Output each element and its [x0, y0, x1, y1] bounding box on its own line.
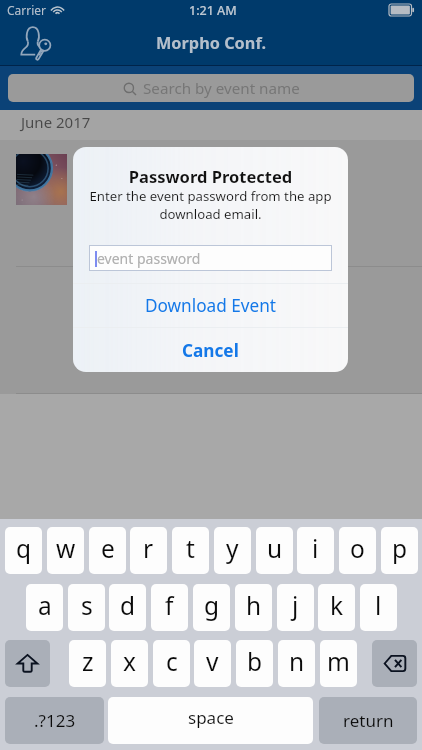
staticText: c — [166, 645, 178, 678]
button[interactable]: w — [47, 527, 84, 574]
button[interactable]: Shift — [5, 640, 50, 687]
staticText: b — [247, 645, 263, 678]
staticText: space — [188, 706, 234, 729]
button[interactable]: e — [89, 527, 126, 574]
staticText: r — [143, 532, 154, 565]
button[interactable]: Account login — [12, 19, 60, 67]
staticText: q — [16, 532, 32, 565]
button[interactable]: space — [108, 697, 313, 744]
staticText: Morpho Conf. — [156, 32, 266, 54]
staticText: s — [81, 589, 93, 622]
button[interactable]: n — [278, 640, 315, 687]
button[interactable]: p — [381, 527, 418, 574]
button[interactable]: o — [339, 527, 376, 574]
staticText: d — [120, 589, 136, 622]
staticText: Enter the event password from the app do… — [73, 187, 348, 223]
staticText: .?123 — [34, 709, 76, 732]
button[interactable]: d — [109, 584, 146, 631]
button[interactable]: q — [5, 527, 42, 574]
staticText: l — [375, 589, 382, 622]
staticText: u — [267, 532, 283, 565]
button[interactable]: x — [111, 640, 148, 687]
staticText: a — [38, 589, 52, 622]
staticText: f — [165, 589, 174, 622]
button[interactable]: z — [69, 640, 106, 687]
button[interactable]: Download Event — [73, 284, 348, 327]
staticText: i — [312, 532, 319, 565]
staticText: x — [123, 645, 136, 678]
button[interactable]: s — [68, 584, 105, 631]
button[interactable]: g — [193, 584, 230, 631]
staticText: t — [186, 532, 195, 565]
staticText: h — [246, 589, 262, 622]
staticText: event password — [97, 249, 201, 268]
button[interactable]: return — [319, 697, 417, 744]
staticText: p — [392, 532, 408, 565]
staticText: w — [56, 532, 76, 565]
button[interactable]: l — [360, 584, 397, 631]
staticText: y — [226, 532, 239, 565]
staticText: j — [292, 589, 299, 622]
staticText: Cancel — [182, 339, 239, 362]
button[interactable]: a — [26, 584, 63, 631]
button[interactable]: b — [236, 640, 273, 687]
staticText: Password Protected — [73, 165, 348, 187]
button[interactable]: u — [256, 527, 293, 574]
button[interactable]: m — [320, 640, 357, 687]
staticText: Carrier — [7, 2, 47, 18]
staticText: 1:21 AM — [189, 2, 237, 19]
button[interactable]: j — [277, 584, 314, 631]
button[interactable]: f — [151, 584, 188, 631]
staticText: k — [330, 589, 344, 622]
button[interactable]: h — [235, 584, 272, 631]
button[interactable] — [16, 154, 67, 205]
button[interactable]: i — [297, 527, 334, 574]
staticText: n — [289, 645, 305, 678]
button[interactable]: v — [194, 640, 231, 687]
button[interactable]: k — [318, 584, 355, 631]
button[interactable]: Backspace — [372, 640, 417, 687]
staticText: e — [101, 532, 115, 565]
button[interactable]: event password — [90, 246, 331, 270]
staticText: return — [343, 709, 394, 732]
button[interactable]: Cancel — [73, 328, 348, 372]
staticText: June 2017 — [21, 112, 91, 132]
button[interactable]: .?123 — [5, 697, 104, 744]
button[interactable]: y — [214, 527, 251, 574]
button[interactable]: c — [153, 640, 190, 687]
staticText: Download Event — [145, 294, 277, 317]
staticText: m — [327, 645, 350, 678]
button[interactable]: t — [172, 527, 209, 574]
button[interactable]: Search by event name — [8, 74, 414, 102]
staticText: z — [82, 645, 94, 678]
staticText: o — [350, 532, 365, 565]
staticText: Search by event name — [143, 78, 300, 99]
button[interactable]: r — [130, 527, 167, 574]
staticText: g — [204, 589, 220, 622]
staticText: v — [206, 645, 219, 678]
